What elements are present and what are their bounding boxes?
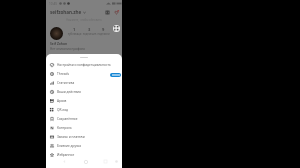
staticText: Нет описания профиля	[50, 47, 85, 51]
button[interactable]: QR-код	[46, 105, 122, 114]
button[interactable]: Близкие друзья	[46, 141, 122, 150]
staticText: 1	[73, 27, 76, 32]
staticText: Ваши действия	[57, 90, 81, 94]
staticText: Настройки и конфиденциальность	[57, 63, 111, 67]
button[interactable]: Сохранённое	[46, 114, 122, 123]
button[interactable]: 3	[82, 27, 97, 36]
button[interactable]: Threads	[46, 69, 122, 78]
staticText: публикация	[67, 32, 82, 36]
staticText: seifzohan.zhe	[50, 9, 82, 15]
button[interactable]: Статистика	[46, 78, 122, 87]
staticText: Статистика	[57, 81, 75, 85]
button[interactable]: Ваши действия	[46, 87, 122, 96]
button[interactable]: Menu	[113, 158, 120, 165]
button[interactable]: Profile photo	[50, 27, 63, 40]
button[interactable]: Настройки и конфиденциальность	[46, 60, 122, 69]
button[interactable]: 9	[97, 27, 110, 36]
staticText: 3	[88, 27, 91, 32]
button[interactable]: Архив	[46, 96, 122, 105]
staticText: Нажмите, чтобы обновить	[66, 18, 102, 22]
button[interactable]: Избранное	[46, 150, 122, 159]
button[interactable]: Back	[61, 158, 68, 165]
staticText: Избранное	[57, 153, 75, 157]
button[interactable]: QR code	[113, 25, 120, 32]
staticText: Архив	[57, 99, 67, 103]
button[interactable]: Заказы и платежи	[46, 132, 122, 141]
button[interactable]: Activity	[114, 10, 119, 15]
staticText: Близкие друзья	[57, 144, 82, 148]
button[interactable]: Threads	[105, 10, 110, 15]
staticText: Threads	[57, 72, 70, 76]
staticText: 9	[102, 27, 105, 32]
staticText: Заказы и платежи	[57, 135, 85, 139]
staticText: подписки	[97, 32, 110, 36]
button[interactable]: Контроль	[46, 123, 122, 132]
staticText: Контроль	[57, 126, 72, 130]
button[interactable]	[110, 73, 121, 77]
button[interactable]: 1	[67, 27, 82, 36]
staticText: QR-код	[57, 108, 68, 112]
staticText: Seif Zohan	[50, 41, 68, 45]
button[interactable]: Home	[82, 158, 89, 165]
button[interactable]: Recents	[102, 158, 109, 165]
staticText: Сохранённое	[57, 117, 78, 121]
staticText: подписчика	[82, 32, 97, 36]
staticText: 10:45	[49, 2, 58, 6]
